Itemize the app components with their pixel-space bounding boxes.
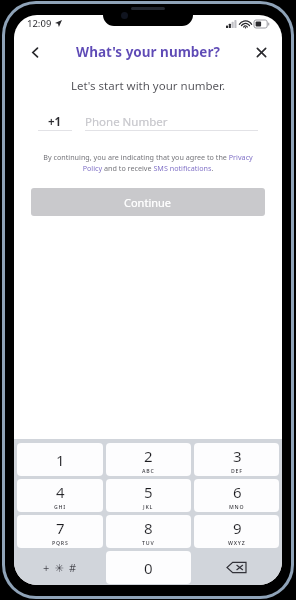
staticText: Let's start with your number. (14, 78, 282, 94)
staticText: 8 (144, 518, 153, 538)
staticText: WXYZ (228, 539, 246, 546)
staticText: PQRS (52, 539, 69, 546)
staticText: Continue (124, 195, 172, 210)
staticText: TUV (142, 539, 155, 546)
button[interactable]: 6 (194, 479, 279, 512)
button[interactable]: By continuing, you are indicating that y… (43, 152, 253, 173)
staticText: DEF (231, 467, 243, 474)
staticText: 0 (144, 558, 153, 578)
button[interactable]: 3 (194, 443, 279, 476)
staticText: +1 (48, 114, 62, 130)
button[interactable]: Close (248, 41, 274, 63)
button[interactable]: + ✳ # (17, 551, 103, 584)
button[interactable]: +1 (38, 113, 72, 131)
staticText: 2 (144, 446, 153, 466)
button[interactable]: 7 (17, 515, 103, 548)
button[interactable]: 2 (106, 443, 191, 476)
button[interactable]: Backspace (194, 551, 279, 584)
staticText: What's your number? (14, 43, 282, 61)
staticText: 9 (233, 518, 242, 538)
button[interactable]: Continue (31, 188, 265, 216)
button[interactable]: 1 (17, 443, 103, 476)
staticText: 3 (233, 446, 242, 466)
staticText: 1 (56, 450, 65, 470)
button[interactable]: 0 (106, 551, 191, 584)
button[interactable]: 9 (194, 515, 279, 548)
staticText: GHI (54, 503, 67, 510)
staticText: + ✳ # (43, 560, 78, 575)
staticText: 5 (144, 482, 153, 502)
staticText: Phone Number (85, 114, 168, 130)
staticText: 6 (233, 482, 242, 502)
staticText: 4 (56, 482, 65, 502)
button[interactable]: 4 (17, 479, 103, 512)
button[interactable]: Phone Number (85, 113, 258, 131)
staticText: JKL (143, 503, 154, 510)
button[interactable]: 5 (106, 479, 191, 512)
staticText: ABC (142, 467, 155, 474)
staticText: 7 (56, 518, 65, 538)
button[interactable]: 8 (106, 515, 191, 548)
staticText: MNO (229, 503, 245, 510)
staticText: 12:09 (27, 17, 52, 30)
button[interactable]: Back (22, 41, 48, 63)
